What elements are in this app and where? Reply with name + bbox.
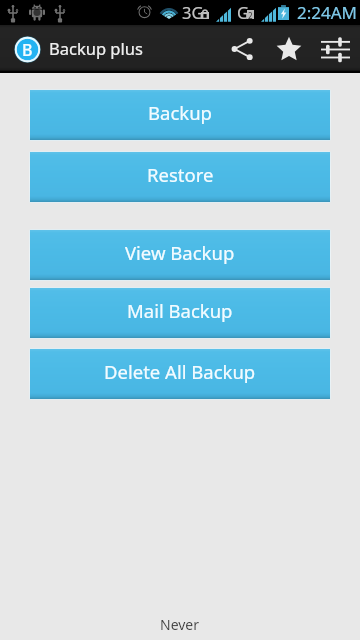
staticText: Delete All Backup	[104, 359, 256, 384]
button[interactable]: Backup	[29, 89, 331, 141]
button[interactable]: Favorite	[266, 25, 312, 73]
button[interactable]: Settings	[312, 25, 358, 73]
staticText: Backup plus	[49, 37, 143, 59]
staticText: Mail Backup	[127, 298, 233, 323]
staticText: Never	[160, 615, 200, 634]
staticText: Backup	[148, 100, 212, 125]
staticText: View Backup	[125, 240, 235, 265]
button[interactable]: Mail Backup	[29, 287, 331, 339]
button[interactable]: Restore	[29, 151, 331, 203]
staticText: B	[22, 39, 33, 61]
staticText: 2	[248, 10, 253, 19]
button[interactable]: View Backup	[29, 229, 331, 281]
staticText: 2:24AM	[297, 1, 358, 24]
staticText: 3G	[182, 1, 204, 23]
button[interactable]: Share	[218, 25, 266, 73]
button[interactable]: Delete All Backup	[29, 348, 331, 400]
staticText: G	[237, 1, 250, 23]
staticText: Restore	[147, 162, 214, 187]
